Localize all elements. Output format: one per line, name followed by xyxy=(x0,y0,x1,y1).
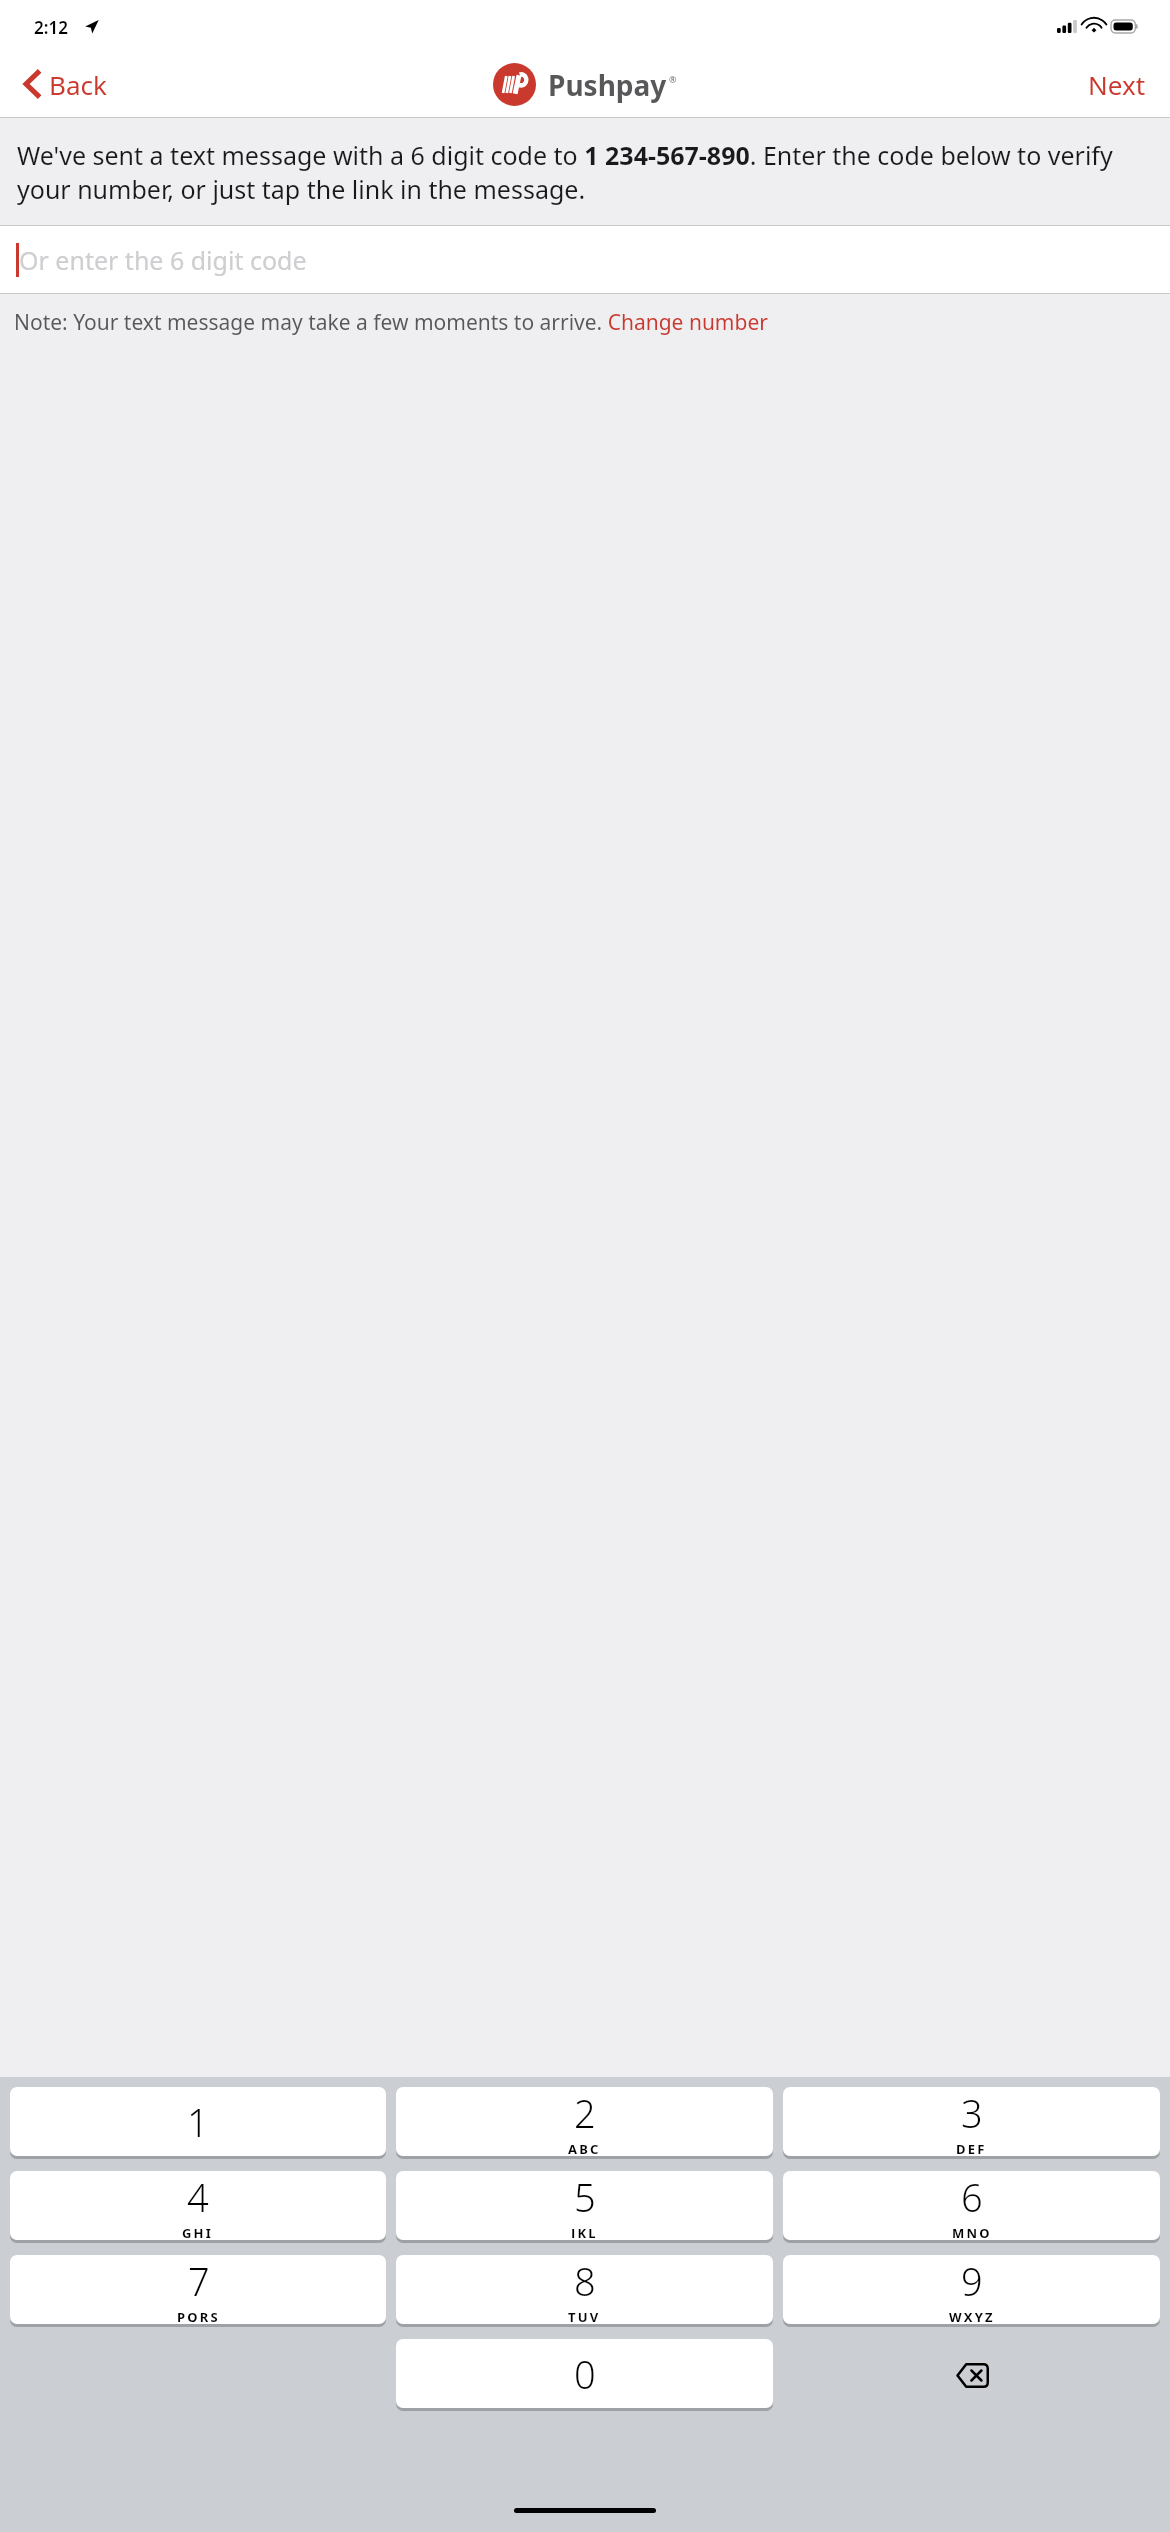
staticText: 5 xyxy=(574,2171,596,2223)
button[interactable]: 9 xyxy=(783,2255,1160,2324)
button[interactable]: Delete xyxy=(778,2339,1165,2411)
staticText: TUV xyxy=(568,2308,601,2322)
staticText: 3 xyxy=(961,2087,983,2139)
staticText: WXYZ xyxy=(949,2308,995,2322)
button[interactable]: 8 xyxy=(396,2255,773,2324)
button[interactable]: 3 xyxy=(783,2087,1160,2156)
staticText: 9 xyxy=(961,2255,983,2307)
button[interactable]: 2 xyxy=(396,2087,773,2156)
staticText: DEF xyxy=(956,2140,987,2154)
button[interactable]: 6 xyxy=(783,2171,1160,2240)
button[interactable]: 7 xyxy=(10,2255,386,2324)
staticText: ® xyxy=(669,73,677,85)
staticText: 4 xyxy=(187,2171,209,2223)
staticText: We've sent a text message with a 6 digit… xyxy=(17,138,1150,207)
button[interactable]: Back xyxy=(0,50,123,118)
button[interactable]: 0 xyxy=(396,2339,773,2408)
button[interactable]: 5 xyxy=(396,2171,773,2240)
staticText: Or enter the 6 digit code xyxy=(19,243,307,277)
staticText: GHI xyxy=(182,2224,214,2238)
staticText: 2 xyxy=(574,2087,596,2139)
staticText: 1 xyxy=(187,2096,209,2148)
staticText: ABC xyxy=(568,2140,601,2154)
staticText: PQRS xyxy=(177,2308,220,2322)
staticText: 6 xyxy=(961,2171,983,2223)
button[interactable]: 4 xyxy=(10,2171,386,2240)
button[interactable]: 1 xyxy=(10,2087,386,2156)
staticText: MNO xyxy=(952,2224,992,2238)
staticText: 2:12 xyxy=(34,16,68,39)
staticText: JKL xyxy=(571,2224,598,2238)
staticText: Pushpay xyxy=(548,66,667,104)
staticText: 8 xyxy=(574,2255,596,2307)
staticText: 7 xyxy=(188,2255,210,2307)
staticText: Back xyxy=(49,67,107,102)
staticText: Next xyxy=(1088,67,1146,102)
button[interactable]: Or enter the 6 digit code xyxy=(0,225,1170,294)
button[interactable]: Note: Your text message may take a few m… xyxy=(0,294,1170,337)
button[interactable]: Next xyxy=(1064,50,1170,118)
staticText: 0 xyxy=(574,2348,596,2400)
